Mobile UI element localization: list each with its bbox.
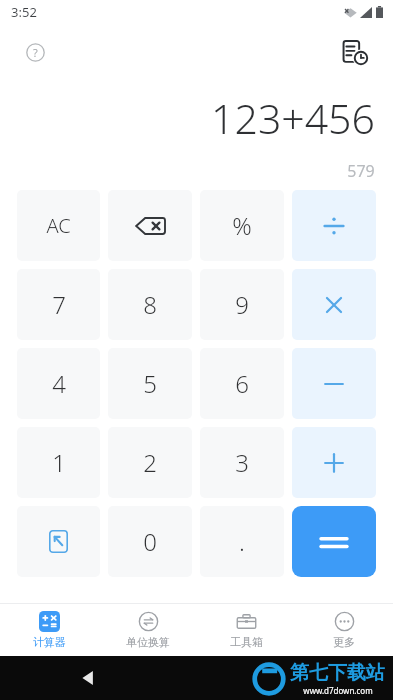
- button[interactable]: [292, 506, 376, 577]
- staticText: 579: [347, 160, 375, 182]
- staticText: %: [232, 209, 252, 242]
- button[interactable]: %: [200, 190, 284, 261]
- button[interactable]: 计算器: [0, 611, 99, 649]
- staticText: 3: [235, 446, 249, 479]
- button[interactable]: 1: [17, 427, 100, 498]
- staticText: 7: [52, 288, 66, 321]
- button[interactable]: 0: [108, 506, 192, 577]
- staticText: 第七下载站: [290, 661, 385, 685]
- staticText: 工具箱: [230, 635, 263, 649]
- staticText: 123+456: [211, 90, 375, 146]
- button[interactable]: 3: [200, 427, 284, 498]
- button[interactable]: 5: [108, 348, 192, 419]
- staticText: ?: [33, 45, 38, 60]
- button[interactable]: [292, 269, 376, 340]
- staticText: 计算器: [33, 635, 66, 649]
- staticText: AC: [46, 212, 71, 239]
- button[interactable]: 工具箱: [197, 611, 295, 649]
- staticText: 5: [143, 367, 157, 400]
- button[interactable]: 4: [17, 348, 100, 419]
- staticText: 8: [143, 288, 157, 321]
- button[interactable]: 2: [108, 427, 192, 498]
- button[interactable]: 单位换算: [99, 611, 197, 649]
- staticText: 2: [143, 446, 157, 479]
- button[interactable]: [292, 427, 376, 498]
- button[interactable]: 更多: [295, 611, 393, 649]
- staticText: 1: [52, 446, 66, 479]
- button[interactable]: Help: [18, 35, 52, 69]
- staticText: 9: [235, 288, 249, 321]
- staticText: 单位换算: [126, 635, 170, 649]
- staticText: www.d7down.com: [303, 685, 373, 696]
- staticText: 0: [143, 525, 157, 558]
- staticText: .: [239, 525, 245, 558]
- button[interactable]: 6: [200, 348, 284, 419]
- button[interactable]: Back: [72, 662, 104, 694]
- button[interactable]: History: [335, 32, 375, 72]
- button[interactable]: 8: [108, 269, 192, 340]
- button[interactable]: Scientific mode: [17, 506, 100, 577]
- staticText: 4: [52, 367, 66, 400]
- button[interactable]: AC: [17, 190, 100, 261]
- button[interactable]: 7: [17, 269, 100, 340]
- button[interactable]: 9: [200, 269, 284, 340]
- button[interactable]: Backspace: [108, 190, 192, 261]
- staticText: 6: [235, 367, 249, 400]
- button[interactable]: [292, 348, 376, 419]
- staticText: 3:52: [11, 3, 37, 21]
- button[interactable]: .: [200, 506, 284, 577]
- button[interactable]: [292, 190, 376, 261]
- staticText: 更多: [333, 635, 355, 649]
